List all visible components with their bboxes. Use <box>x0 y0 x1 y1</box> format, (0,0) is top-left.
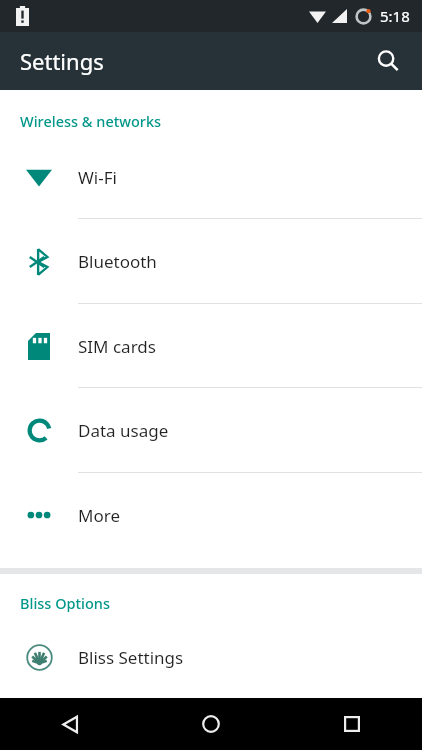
staticText: 5:18 <box>380 6 410 26</box>
staticText: Settings <box>20 46 104 76</box>
button[interactable]: Bluetooth <box>0 219 422 304</box>
button[interactable]: Recent apps <box>281 698 422 750</box>
staticText: More <box>78 504 120 527</box>
button[interactable]: Bliss Settings <box>0 617 422 698</box>
button[interactable]: SIM cards <box>0 304 422 388</box>
button[interactable]: Search <box>364 37 412 85</box>
button[interactable]: Home <box>140 698 281 750</box>
staticText: Wi-Fi <box>78 166 117 189</box>
button[interactable]: Back <box>0 698 140 750</box>
staticText: Bliss Settings <box>78 646 184 669</box>
staticText: Bluetooth <box>78 250 157 273</box>
staticText: Wireless & networks <box>20 111 162 131</box>
staticText: Data usage <box>78 419 169 442</box>
button[interactable]: Wi-Fi <box>0 135 422 219</box>
button[interactable]: Data usage <box>0 388 422 473</box>
button[interactable]: More <box>0 473 422 557</box>
staticText: Bliss Options <box>20 593 111 613</box>
staticText: SIM cards <box>78 335 156 358</box>
